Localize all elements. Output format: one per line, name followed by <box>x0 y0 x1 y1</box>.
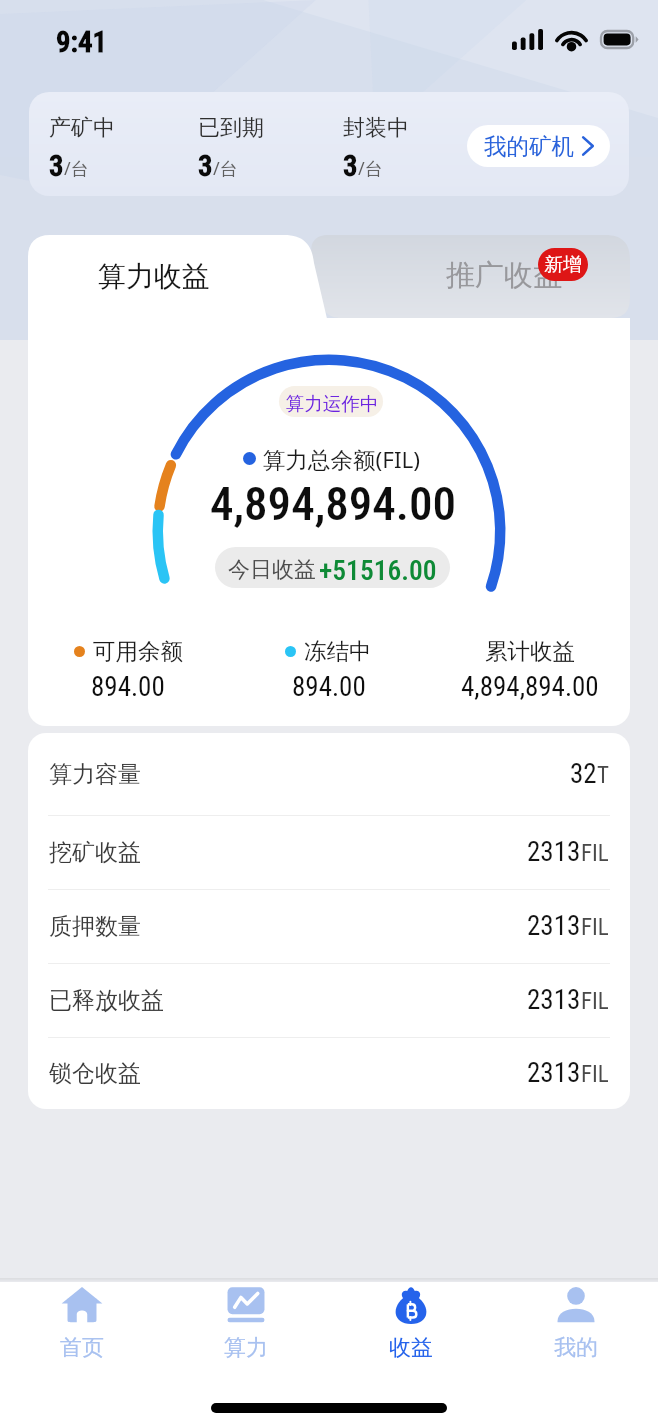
staticText: 已释放收益 <box>49 986 164 1015</box>
button[interactable]: 挖矿收益 <box>28 815 630 889</box>
staticText: 我的矿机 <box>484 132 574 160</box>
staticText: 质押数量 <box>49 912 141 941</box>
staticText: /台 <box>358 156 383 181</box>
staticText: 算力运作中 <box>286 392 379 415</box>
staticText: 封装中 <box>343 114 409 142</box>
staticText: 4,894,894.00 <box>461 671 599 703</box>
staticText: 算力总余额(FIL) <box>263 444 421 475</box>
staticText: 产矿中 <box>49 114 115 142</box>
staticText: /台 <box>64 156 89 181</box>
staticText: FIL <box>581 1061 609 1088</box>
button[interactable]: Home <box>0 1278 164 1378</box>
staticText: 3 <box>49 149 64 183</box>
staticText: 2313 <box>527 984 581 1016</box>
staticText: 累计收益 <box>485 637 575 665</box>
staticText: 3 <box>343 149 358 183</box>
staticText: 32 <box>570 758 597 790</box>
button[interactable]: 算力容量 <box>28 733 630 815</box>
staticText: 推广收益 <box>446 257 562 294</box>
staticText: +51516.00 <box>319 554 437 586</box>
staticText: 2313 <box>527 836 581 868</box>
staticText: 894.00 <box>292 671 366 703</box>
staticText: 新增 <box>544 253 582 277</box>
staticText: /台 <box>213 156 238 181</box>
staticText: 收益 <box>389 1334 433 1362</box>
button[interactable]: Earnings <box>328 1278 493 1378</box>
other: Wi-Fi <box>556 29 587 50</box>
staticText: FIL <box>581 914 609 941</box>
button[interactable]: 质押数量 <box>28 889 630 963</box>
staticText: FIL <box>581 988 609 1015</box>
staticText: 9:41 <box>56 25 108 59</box>
button[interactable]: 推广收益 <box>308 235 630 318</box>
staticText: 锁仓收益 <box>49 1059 141 1088</box>
staticText: 算力容量 <box>49 760 141 789</box>
staticText: 2313 <box>527 910 581 942</box>
staticText: 4,894,894.00 <box>210 476 457 531</box>
button[interactable]: 已释放收益 <box>28 963 630 1037</box>
other: Cellular signal <box>512 29 543 50</box>
staticText: 首页 <box>60 1334 104 1362</box>
staticText: 已到期 <box>198 114 264 142</box>
button[interactable]: Profile <box>493 1278 658 1378</box>
button[interactable]: 我的矿机 <box>467 125 610 167</box>
staticText: 2313 <box>527 1057 581 1089</box>
staticText: 冻结中 <box>304 637 372 665</box>
staticText: FIL <box>581 840 609 867</box>
staticText: 3 <box>198 149 213 183</box>
staticText: 算力收益 <box>98 259 210 294</box>
other: Battery <box>600 30 638 49</box>
staticText: 挖矿收益 <box>49 838 141 867</box>
button[interactable]: 算力收益 <box>28 235 328 323</box>
staticText: T <box>597 762 609 789</box>
staticText: 我的 <box>554 1334 598 1362</box>
button[interactable]: Power <box>164 1278 328 1378</box>
button[interactable]: 锁仓收益 <box>28 1037 630 1109</box>
staticText: 可用余额 <box>93 637 183 665</box>
staticText: 算力 <box>224 1334 268 1362</box>
staticText: 894.00 <box>91 671 165 703</box>
staticText: 今日收益 <box>228 556 316 584</box>
